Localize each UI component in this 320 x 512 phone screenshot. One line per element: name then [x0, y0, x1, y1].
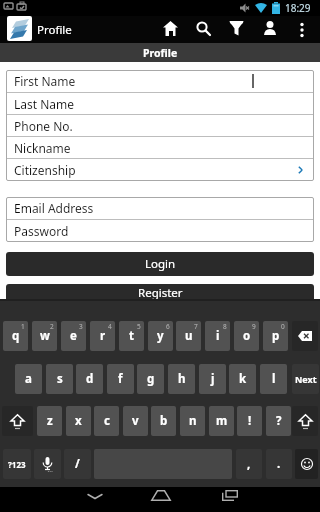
staticText: i	[216, 328, 220, 344]
button[interactable]: ?123	[3, 449, 31, 479]
staticText: Profile	[143, 46, 178, 60]
button[interactable]: Citizenship	[6, 159, 314, 181]
button[interactable]: m	[209, 406, 234, 436]
staticText: a	[25, 371, 32, 387]
button[interactable]	[163, 21, 178, 36]
button[interactable]: i	[205, 321, 230, 351]
button[interactable]: d	[76, 364, 103, 394]
button[interactable]	[87, 493, 103, 500]
staticText: 8	[223, 322, 227, 331]
staticText: !	[248, 413, 252, 429]
staticText: b	[160, 413, 168, 429]
staticText: n	[189, 413, 197, 429]
button[interactable]	[34, 449, 61, 479]
button[interactable]: .	[266, 449, 292, 479]
button[interactable]: ,	[236, 449, 262, 479]
button[interactable]: g	[137, 364, 164, 394]
staticText: 4	[108, 322, 112, 331]
staticText: y	[157, 328, 164, 344]
button[interactable]: v	[123, 406, 148, 436]
staticText: d	[86, 371, 94, 387]
staticText: Nickname	[14, 140, 71, 156]
staticText: g	[147, 371, 155, 387]
button[interactable]: a	[15, 364, 42, 394]
staticText: w	[40, 328, 50, 344]
button[interactable]: Email Address	[6, 197, 314, 219]
button[interactable]	[2, 406, 33, 436]
staticText: Last Name	[14, 96, 75, 112]
button[interactable]: t	[119, 321, 144, 351]
button[interactable]	[298, 22, 306, 38]
staticText: v	[132, 413, 139, 429]
staticText: 7	[194, 322, 198, 331]
button[interactable]	[292, 321, 318, 351]
button[interactable]: Register	[6, 284, 314, 302]
button[interactable]: y	[148, 321, 173, 351]
button[interactable]	[151, 490, 171, 501]
staticText: m	[216, 413, 228, 429]
button[interactable]: k	[229, 364, 256, 394]
staticText: t	[129, 328, 134, 344]
button[interactable]: w	[32, 321, 57, 351]
button[interactable]: b	[151, 406, 176, 436]
button[interactable]: Last Name	[6, 93, 314, 114]
button[interactable]: Login	[6, 252, 314, 276]
staticText: 6	[166, 322, 170, 331]
staticText: 5	[137, 322, 141, 331]
staticText: k	[239, 371, 247, 387]
button[interactable]	[196, 21, 211, 36]
staticText: 3	[79, 322, 83, 331]
staticText: 2	[50, 322, 54, 331]
staticText: 18:29	[285, 1, 311, 15]
staticText: 9	[252, 322, 256, 331]
button[interactable]	[292, 406, 318, 436]
button[interactable]: h	[168, 364, 195, 394]
button[interactable]: /	[64, 449, 91, 479]
button[interactable]: e	[61, 321, 86, 351]
staticText: Next	[295, 373, 317, 385]
button[interactable]	[229, 21, 244, 36]
button[interactable]: r	[90, 321, 115, 351]
staticText: First Name	[14, 73, 76, 89]
button[interactable]	[295, 449, 318, 479]
staticText: q	[12, 328, 20, 344]
button[interactable]: s	[46, 364, 73, 394]
button[interactable]: First Name	[6, 70, 314, 92]
staticText: ?123	[8, 459, 26, 470]
button[interactable]: l	[260, 364, 287, 394]
staticText: l	[272, 371, 276, 387]
staticText: Password	[14, 223, 69, 239]
button[interactable]: n	[180, 406, 205, 436]
button[interactable]: ?	[266, 406, 291, 436]
staticText: o	[243, 328, 251, 344]
button[interactable]: !	[237, 406, 262, 436]
button[interactable]: q	[3, 321, 28, 351]
button[interactable]: u	[176, 321, 201, 351]
staticText: Register	[138, 285, 183, 301]
button[interactable]: o	[234, 321, 259, 351]
staticText: Citizenship	[14, 162, 76, 178]
staticText: c	[104, 413, 110, 429]
staticText: 0	[281, 322, 285, 331]
button[interactable]: x	[66, 406, 91, 436]
staticText: 1	[21, 322, 25, 331]
staticText: Profile	[37, 22, 72, 38]
button[interactable]: Next	[292, 364, 319, 394]
staticText: u	[185, 328, 193, 344]
button[interactable]: Phone No.	[6, 115, 314, 136]
staticText: Phone No.	[14, 118, 73, 134]
button[interactable]: z	[37, 406, 62, 436]
staticText: z	[47, 413, 53, 429]
button[interactable]: c	[94, 406, 119, 436]
button[interactable]: f	[107, 364, 134, 394]
button[interactable]	[263, 21, 277, 35]
button[interactable]: Nickname	[6, 137, 314, 158]
staticText: p	[272, 328, 280, 344]
button[interactable]	[222, 490, 238, 501]
staticText: s	[57, 371, 63, 387]
staticText: ,	[247, 456, 251, 472]
button[interactable]: p	[263, 321, 288, 351]
button[interactable]: Password	[6, 220, 314, 242]
button[interactable]: j	[199, 364, 226, 394]
